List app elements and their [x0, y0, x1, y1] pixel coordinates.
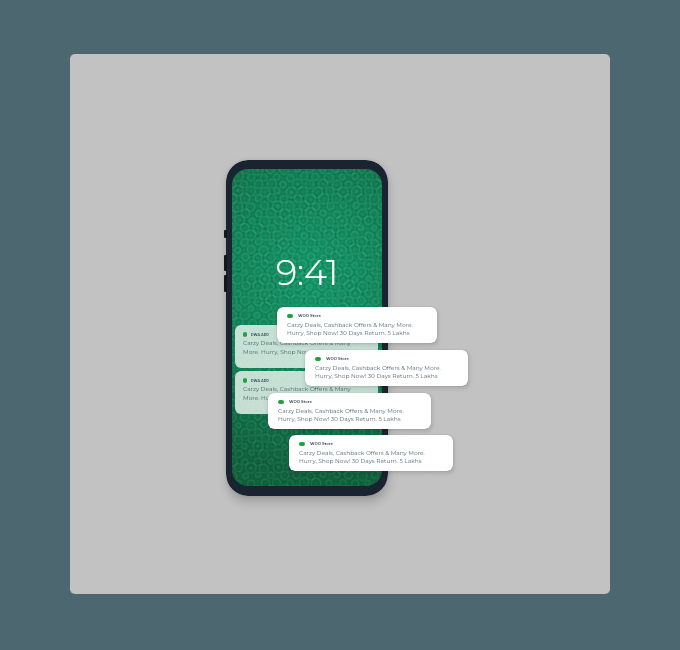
- staticText: Carzy Deals, Cashback Offers & Many More…: [243, 339, 353, 356]
- button[interactable]: WOO Store: [305, 350, 468, 386]
- staticText: Carzy Deals, Cashback Offers & Many More…: [243, 385, 353, 402]
- staticText: PWA APP: [251, 333, 269, 337]
- button[interactable]: WOO Store: [289, 435, 453, 471]
- staticText: WOO Store: [289, 399, 312, 404]
- staticText: PWA APP: [251, 379, 269, 383]
- button[interactable]: PWA APP: [235, 325, 378, 368]
- staticText: WOO Store: [310, 441, 333, 446]
- staticText: WOO Store: [298, 313, 321, 318]
- staticText: Carzy Deals, Cashback Offers & Many More…: [299, 449, 425, 464]
- button[interactable]: WOO Store: [268, 393, 431, 429]
- button[interactable]: PWA APP: [235, 371, 378, 414]
- staticText: Carzy Deals, Cashback Offers & Many More…: [315, 364, 441, 379]
- staticText: Carzy Deals, Cashback Offers & Many More…: [278, 407, 404, 422]
- staticText: Carzy Deals, Cashback Offers & Many More…: [287, 321, 413, 336]
- staticText: 9:41: [276, 251, 339, 294]
- staticText: WOO Store: [326, 356, 349, 361]
- button[interactable]: WOO Store: [277, 307, 437, 343]
